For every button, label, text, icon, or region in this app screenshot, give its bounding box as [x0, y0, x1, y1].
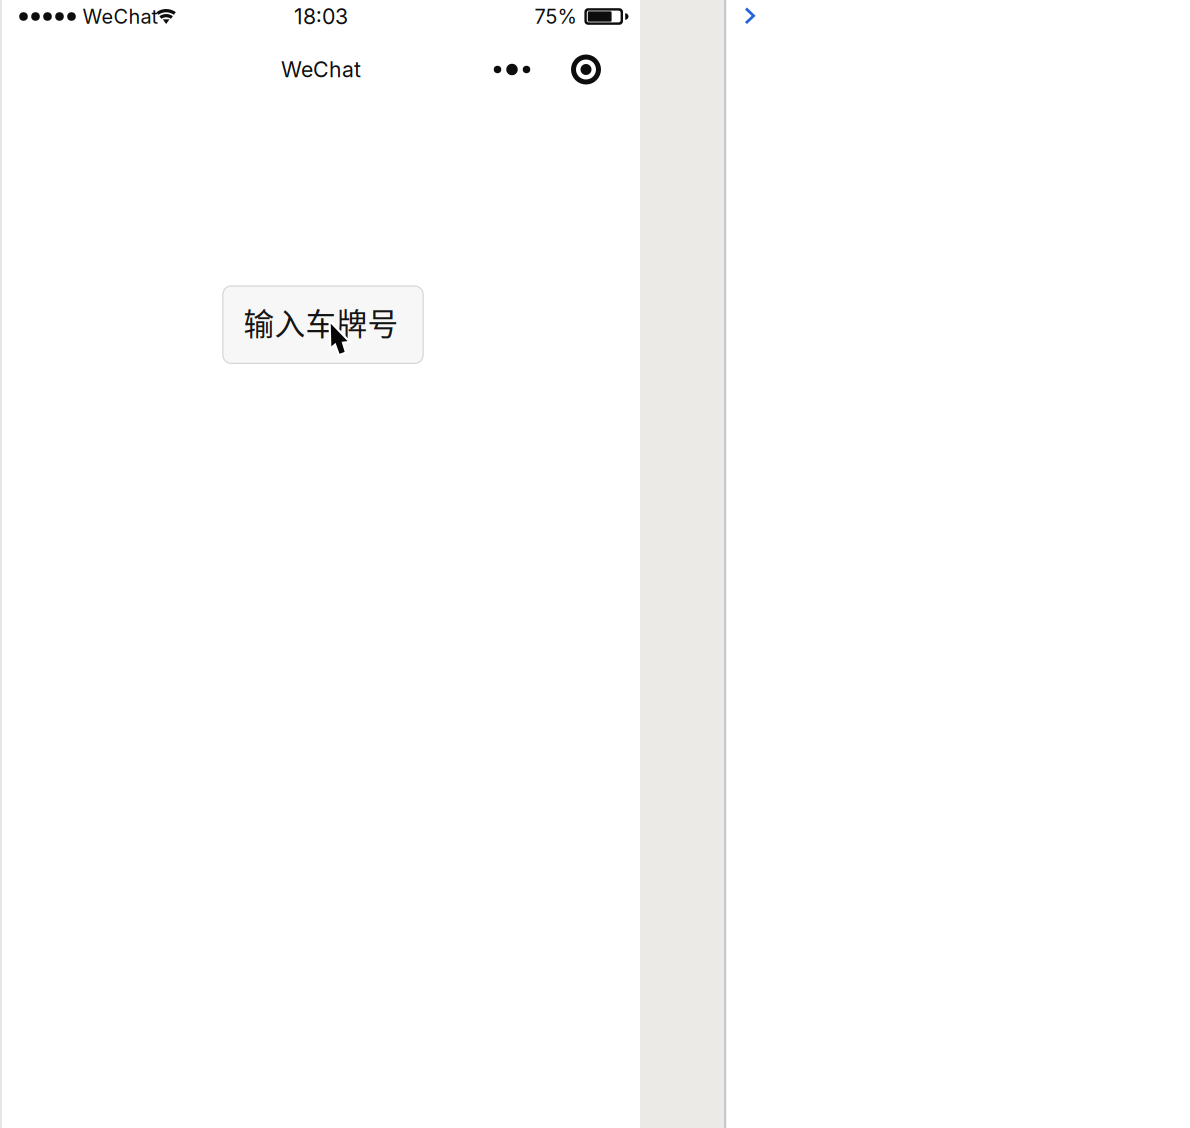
button[interactable]: Close mini program [564, 47, 608, 91]
staticText: WeChat [281, 57, 361, 82]
staticText: WeChat [82, 4, 158, 29]
button[interactable]: 输入车牌号 [223, 286, 423, 363]
staticText: 输入车牌号 [243, 300, 398, 344]
button[interactable]: More [490, 47, 534, 91]
staticText: 75% [534, 4, 576, 29]
staticText: 18:03 [294, 4, 348, 29]
button[interactable]: Expand [739, 4, 761, 28]
